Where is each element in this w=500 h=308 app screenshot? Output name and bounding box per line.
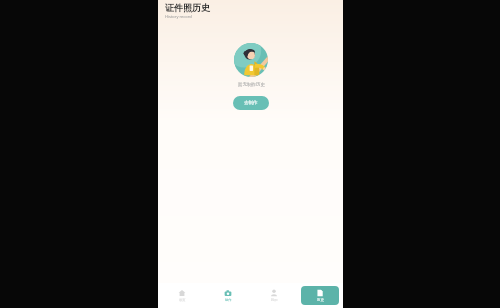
staticText: 证件照历史 (165, 2, 210, 13)
button[interactable]: Profile (251, 283, 297, 308)
button[interactable]: 去制作 (233, 96, 269, 110)
staticText: 暂无制作历史 (238, 82, 265, 88)
button[interactable]: Create (205, 283, 251, 308)
staticText: 制作 (225, 298, 232, 302)
staticText: 历史 (317, 298, 324, 302)
staticText: 首页 (179, 298, 186, 302)
staticText: 去制作 (244, 100, 258, 106)
button[interactable]: Home (158, 283, 205, 308)
staticText: 我的 (271, 298, 278, 302)
staticText: History record (165, 14, 192, 19)
button[interactable]: History record (301, 286, 339, 305)
